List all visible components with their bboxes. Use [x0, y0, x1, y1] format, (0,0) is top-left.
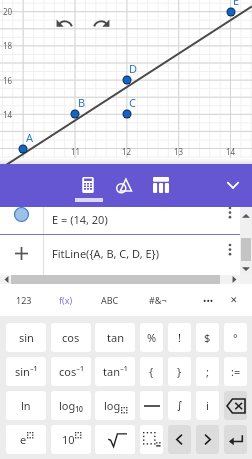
- button[interactable]: Graphing calculator: [72, 169, 104, 201]
- staticText: $: [204, 330, 211, 345]
- button[interactable]: ln: [6, 391, 46, 420]
- button[interactable]: key: [224, 425, 247, 454]
- button[interactable]: cos⁻¹: [51, 357, 91, 386]
- button[interactable]: #&¬: [136, 284, 180, 316]
- staticText: !: [178, 330, 181, 345]
- staticText: B: [78, 95, 86, 110]
- staticText: }: [177, 364, 182, 379]
- staticText: 11: [71, 146, 81, 157]
- staticText: FitLine({A, B, C, D, E}): [52, 246, 160, 261]
- button[interactable]: ;: [196, 357, 219, 386]
- staticText: °: [233, 330, 238, 345]
- staticText: 12: [122, 146, 132, 157]
- button[interactable]: tan: [95, 323, 135, 352]
- button[interactable]: %: [140, 323, 163, 352]
- staticText: 16: [3, 75, 13, 86]
- button[interactable]: Table view: [145, 169, 177, 201]
- button[interactable]: FitLine({A, B, C, D, E}): [0, 235, 252, 275]
- staticText: ∫: [177, 399, 183, 412]
- button[interactable]: 10: [51, 425, 91, 454]
- button[interactable]: Collapse panel: [217, 169, 249, 201]
- button[interactable]: key: [196, 425, 219, 454]
- staticText: •••: [203, 294, 214, 306]
- button[interactable]: cos: [51, 323, 91, 352]
- button[interactable]: i: [196, 391, 219, 420]
- staticText: 14: [226, 146, 236, 157]
- button[interactable]: •••: [186, 284, 230, 316]
- staticText: E: [233, 0, 240, 8]
- staticText: e: [20, 432, 27, 447]
- staticText: sin⁻¹: [15, 364, 38, 379]
- button[interactable]: e: [6, 425, 46, 454]
- staticText: A: [26, 130, 34, 145]
- staticText: ABC: [101, 294, 119, 306]
- staticText: i: [206, 398, 209, 413]
- button[interactable]: $: [196, 323, 219, 352]
- staticText: 10: [62, 432, 75, 447]
- staticText: log: [104, 398, 121, 413]
- button[interactable]: E = (14, 20): [0, 207, 252, 234]
- button[interactable]: }: [168, 357, 191, 386]
- staticText: ;: [206, 364, 209, 379]
- staticText: log₁₀: [59, 398, 83, 413]
- staticText: 14: [3, 109, 13, 120]
- staticText: ✕: [230, 295, 238, 305]
- staticText: {: [149, 364, 154, 379]
- button[interactable]: f(x): [44, 284, 88, 316]
- button[interactable]: sin⁻¹: [6, 357, 46, 386]
- button[interactable]: key: [140, 425, 163, 454]
- staticText: 13: [174, 146, 184, 157]
- button[interactable]: Geometry tools: [108, 169, 140, 201]
- staticText: f(x): [59, 294, 73, 306]
- staticText: 123: [16, 294, 32, 306]
- button[interactable]: !: [168, 323, 191, 352]
- button[interactable]: log₁₀: [51, 391, 91, 420]
- staticText: :=: [231, 364, 241, 379]
- staticText: #&¬: [149, 294, 167, 306]
- button[interactable]: log: [95, 391, 135, 420]
- staticText: ln: [21, 398, 31, 413]
- button[interactable]: key: [168, 425, 191, 454]
- button[interactable]: °: [224, 323, 247, 352]
- button[interactable]: ABC: [88, 284, 132, 316]
- staticText: cos⁻¹: [59, 364, 84, 379]
- staticText: sin: [19, 330, 34, 345]
- button[interactable]: 123: [2, 284, 46, 316]
- button[interactable]: key: [95, 425, 135, 454]
- button[interactable]: sin: [6, 323, 46, 352]
- button[interactable]: {: [140, 357, 163, 386]
- button[interactable]: key: [140, 391, 163, 420]
- button[interactable]: key: [224, 391, 247, 420]
- staticText: 18: [3, 40, 13, 51]
- staticText: tan⁻¹: [103, 364, 128, 379]
- staticText: cos: [62, 330, 80, 345]
- staticText: 20: [3, 6, 13, 17]
- staticText: C: [129, 95, 136, 110]
- staticText: D: [129, 61, 138, 76]
- button[interactable]: ∫: [168, 391, 191, 420]
- staticText: E = (14, 20): [52, 212, 108, 227]
- staticText: tan: [107, 330, 124, 345]
- button[interactable]: ✕: [212, 284, 252, 316]
- button[interactable]: Undo: [55, 14, 74, 33]
- button[interactable]: :=: [224, 357, 247, 386]
- button[interactable]: tan⁻¹: [95, 357, 135, 386]
- button[interactable]: Redo: [92, 14, 111, 33]
- staticText: %: [147, 330, 157, 345]
